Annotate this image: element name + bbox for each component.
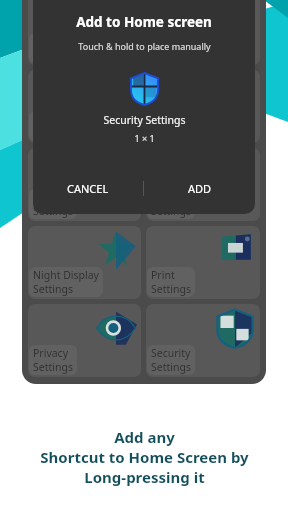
staticText: Settings <box>151 48 191 62</box>
button[interactable]: More <box>28 70 141 143</box>
staticText: Add any <box>114 427 175 447</box>
staticText: Display <box>151 112 187 126</box>
staticText: Settings <box>33 204 73 218</box>
button[interactable]: Night Display <box>28 226 141 299</box>
button[interactable]: Sound <box>28 148 141 221</box>
staticText: Night Display <box>33 268 99 282</box>
staticText: Security <box>151 346 191 360</box>
staticText: ADD <box>188 181 212 196</box>
button[interactable]: Storage <box>146 148 260 221</box>
staticText: Touch & hold to place manually <box>78 40 211 52</box>
staticText: Print <box>151 268 175 282</box>
staticText: Long-pressing it <box>84 467 205 487</box>
staticText: Privacy <box>33 346 69 360</box>
staticText: Settings <box>151 282 191 296</box>
staticText: Add to Home screen <box>76 13 212 31</box>
staticText: Security Settings <box>103 113 186 127</box>
staticText: CANCEL <box>67 181 109 196</box>
staticText: Shortcut to Home Screen by <box>40 447 249 467</box>
staticText: Settings <box>151 360 191 374</box>
staticText: Settings <box>33 360 73 374</box>
button[interactable]: Mobile Network <box>28 0 141 65</box>
button[interactable]: Privacy <box>28 304 141 377</box>
staticText: Settings <box>33 282 73 296</box>
staticText: Storage <box>151 190 190 204</box>
button[interactable]: Display <box>146 70 260 143</box>
staticText: Data Usage <box>151 34 208 48</box>
button[interactable]: Security <box>146 304 260 377</box>
staticText: Mobile Network <box>33 34 112 48</box>
staticText: Settings <box>151 204 191 218</box>
staticText: Settings <box>151 126 191 140</box>
button[interactable]: CANCEL <box>33 166 143 211</box>
staticText: 1 × 1 <box>134 132 155 144</box>
button[interactable]: Data Usage <box>146 0 260 65</box>
button[interactable]: Print <box>146 226 260 299</box>
button[interactable]: ADD <box>144 166 255 211</box>
